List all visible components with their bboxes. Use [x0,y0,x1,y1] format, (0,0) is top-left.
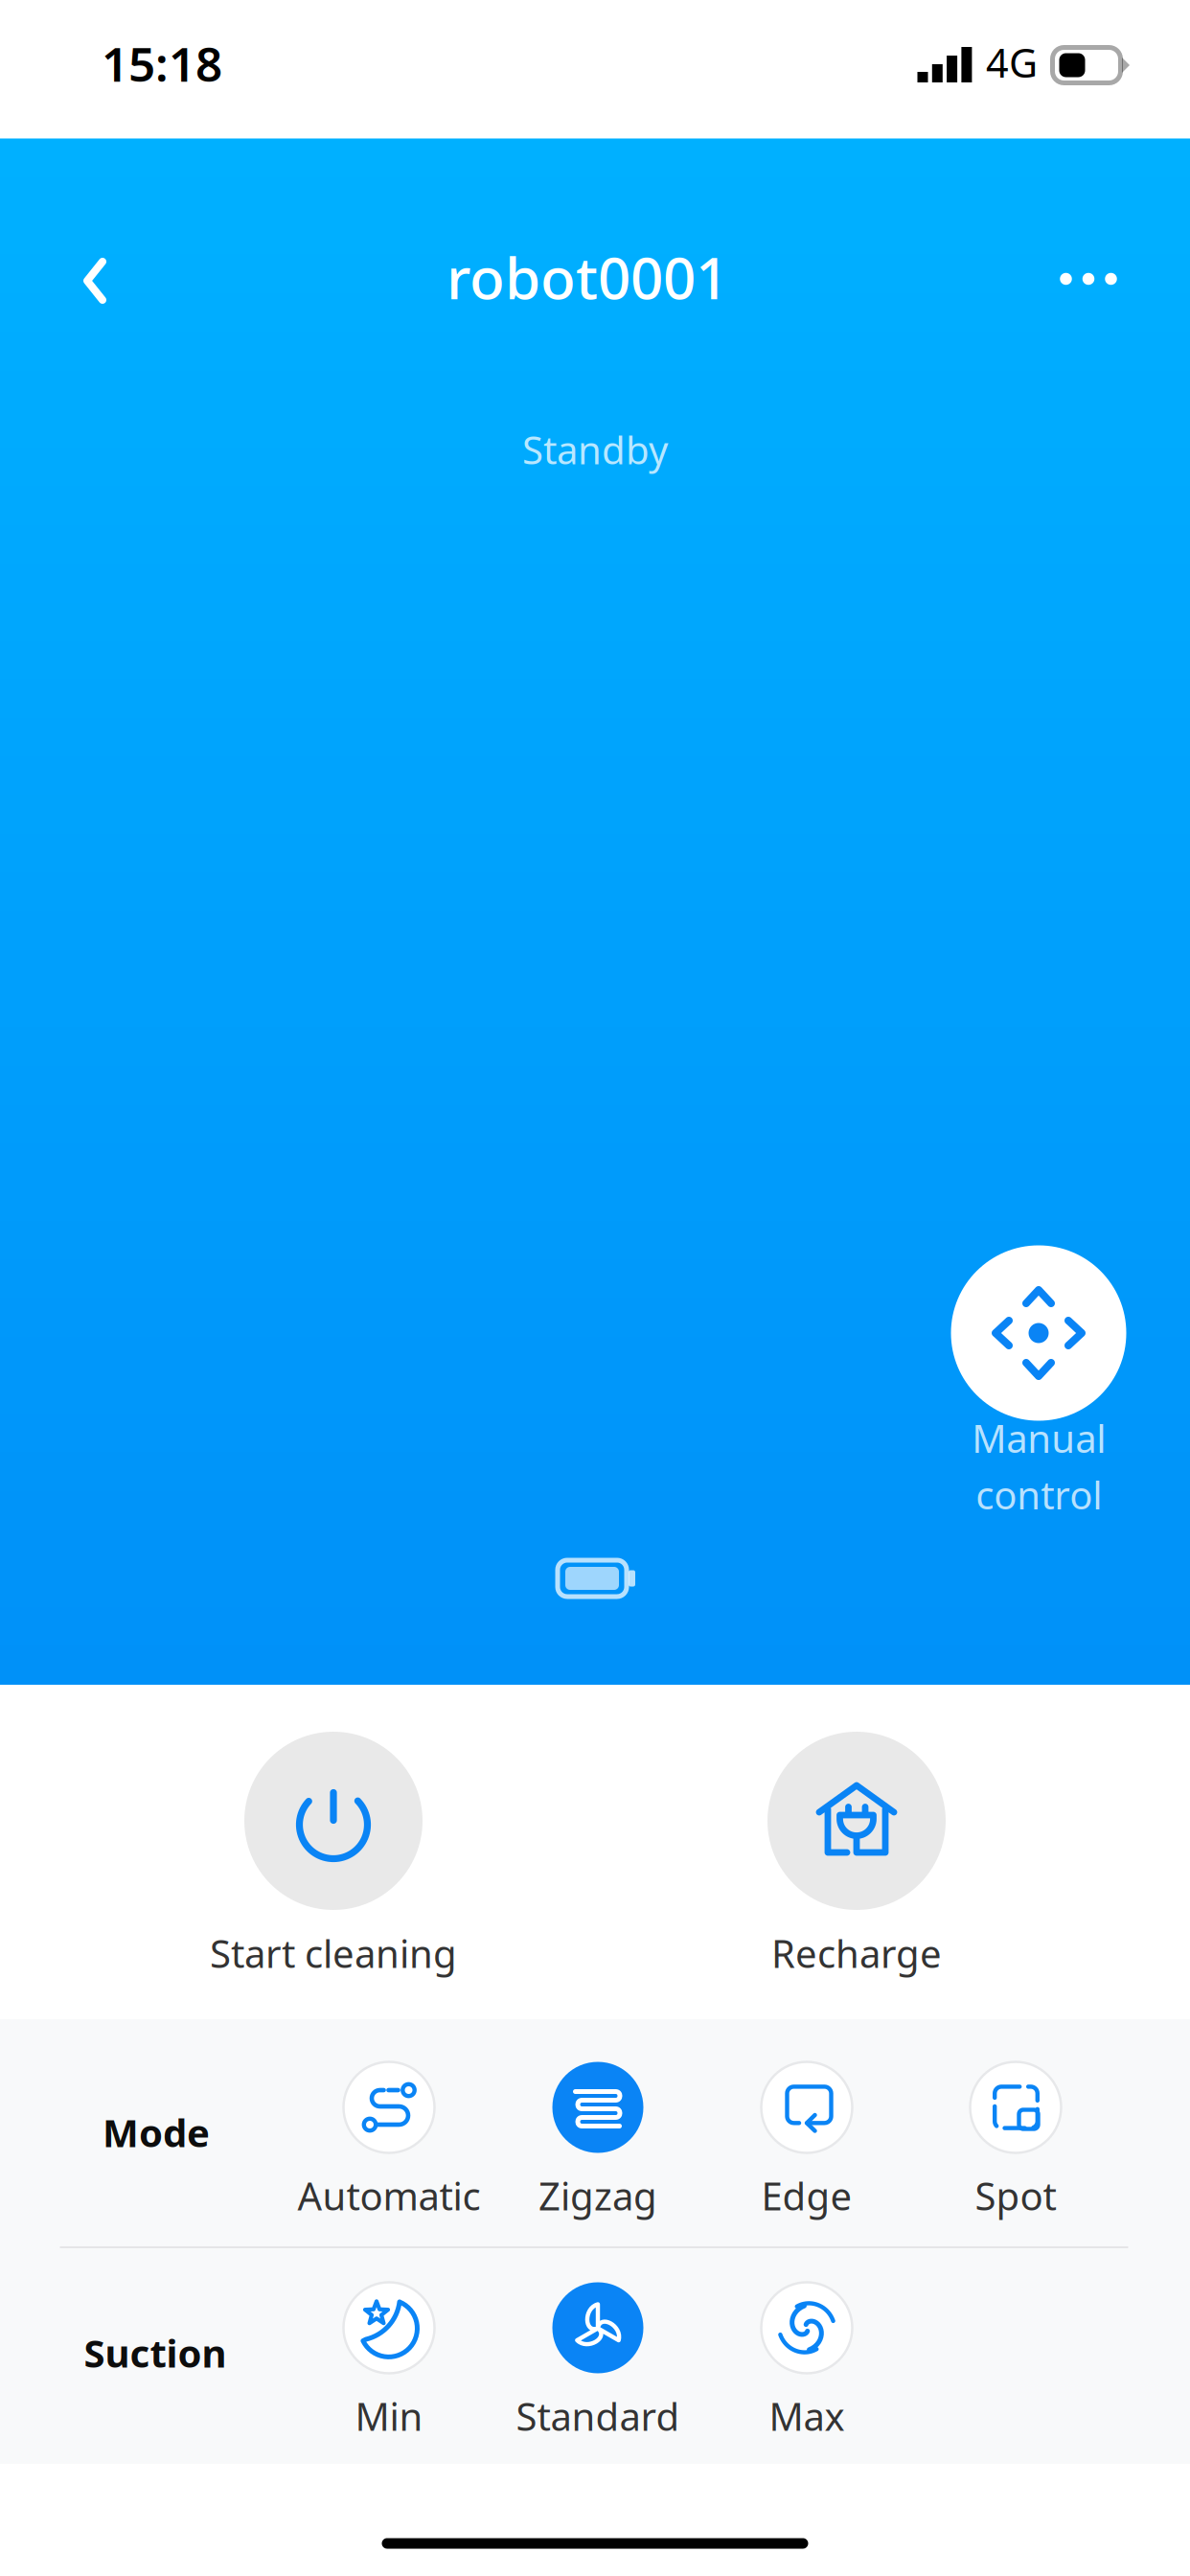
staticText: Zigzag [538,2170,657,2221]
staticText: robot0001 [446,239,728,315]
button[interactable]: Back [39,224,154,337]
staticText: Suction [84,2327,227,2378]
staticText: Edge [761,2170,852,2221]
button[interactable]: Min [285,2282,493,2452]
button[interactable]: Max [702,2282,911,2452]
button[interactable]: More options [1021,222,1156,335]
button[interactable]: Edge [702,2061,911,2232]
button[interactable]: Start cleaning [161,1730,506,2027]
staticText: Max [769,2390,845,2441]
staticText: Automatic [297,2170,481,2221]
staticText: 15:18 [102,32,222,95]
button[interactable]: Zigzag [493,2061,702,2232]
staticText: Mode [103,2107,210,2158]
button[interactable]: Manual control [895,1242,1182,1549]
staticText: Standard [516,2390,680,2441]
button[interactable]: Standard [493,2282,702,2452]
button[interactable]: Spot [911,2061,1120,2232]
staticText: Spot [975,2170,1056,2221]
staticText: Manual control [972,1412,1106,1520]
button[interactable]: Recharge [684,1730,1029,2027]
staticText: 4G [986,36,1038,89]
staticText: Min [355,2390,423,2441]
staticText: Recharge [771,1928,942,1978]
button[interactable]: Automatic [285,2061,493,2232]
staticText: Start cleaning [210,1928,457,1978]
staticText: Standby [522,424,668,475]
